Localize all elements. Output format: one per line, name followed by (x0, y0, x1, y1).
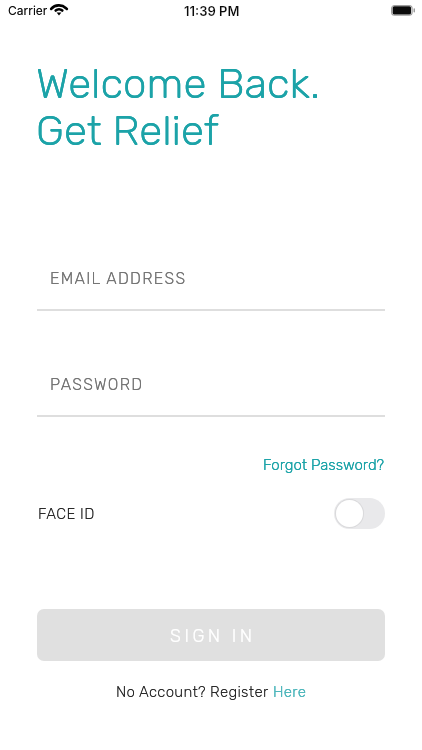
staticText: Welcome Back. (36, 59, 321, 109)
staticText: EMAIL ADDRESS (50, 269, 187, 288)
button[interactable]: PASSWORD (37, 371, 385, 417)
staticText: 11:39 PM (184, 3, 240, 19)
staticText: Here (273, 683, 307, 701)
staticText: Get Relief (36, 106, 219, 156)
staticText: No Account? Register (116, 683, 273, 701)
staticText: Forgot Password? (263, 456, 385, 474)
staticText: FACE ID (38, 505, 95, 523)
staticText: Get Relief (36, 106, 219, 156)
button[interactable]: Face ID toggle (334, 498, 385, 529)
staticText: SIGN IN (170, 625, 256, 646)
staticText: FACE ID (38, 505, 95, 523)
button[interactable]: SIGN IN (37, 609, 385, 661)
staticText: PASSWORD (50, 375, 144, 394)
staticText: Carrier (8, 3, 48, 18)
staticText: EMAIL ADDRESS (50, 269, 187, 288)
staticText: No Account? Register (116, 683, 273, 701)
button[interactable]: Forgot Password? (263, 456, 385, 474)
button[interactable]: Here (273, 683, 307, 701)
staticText: Here (273, 683, 307, 701)
button[interactable]: EMAIL ADDRESS (37, 265, 385, 311)
staticText: Forgot Password? (263, 456, 385, 474)
staticText: Welcome Back. (36, 59, 321, 109)
staticText: PASSWORD (50, 375, 144, 394)
staticText: Carrier (8, 3, 48, 18)
